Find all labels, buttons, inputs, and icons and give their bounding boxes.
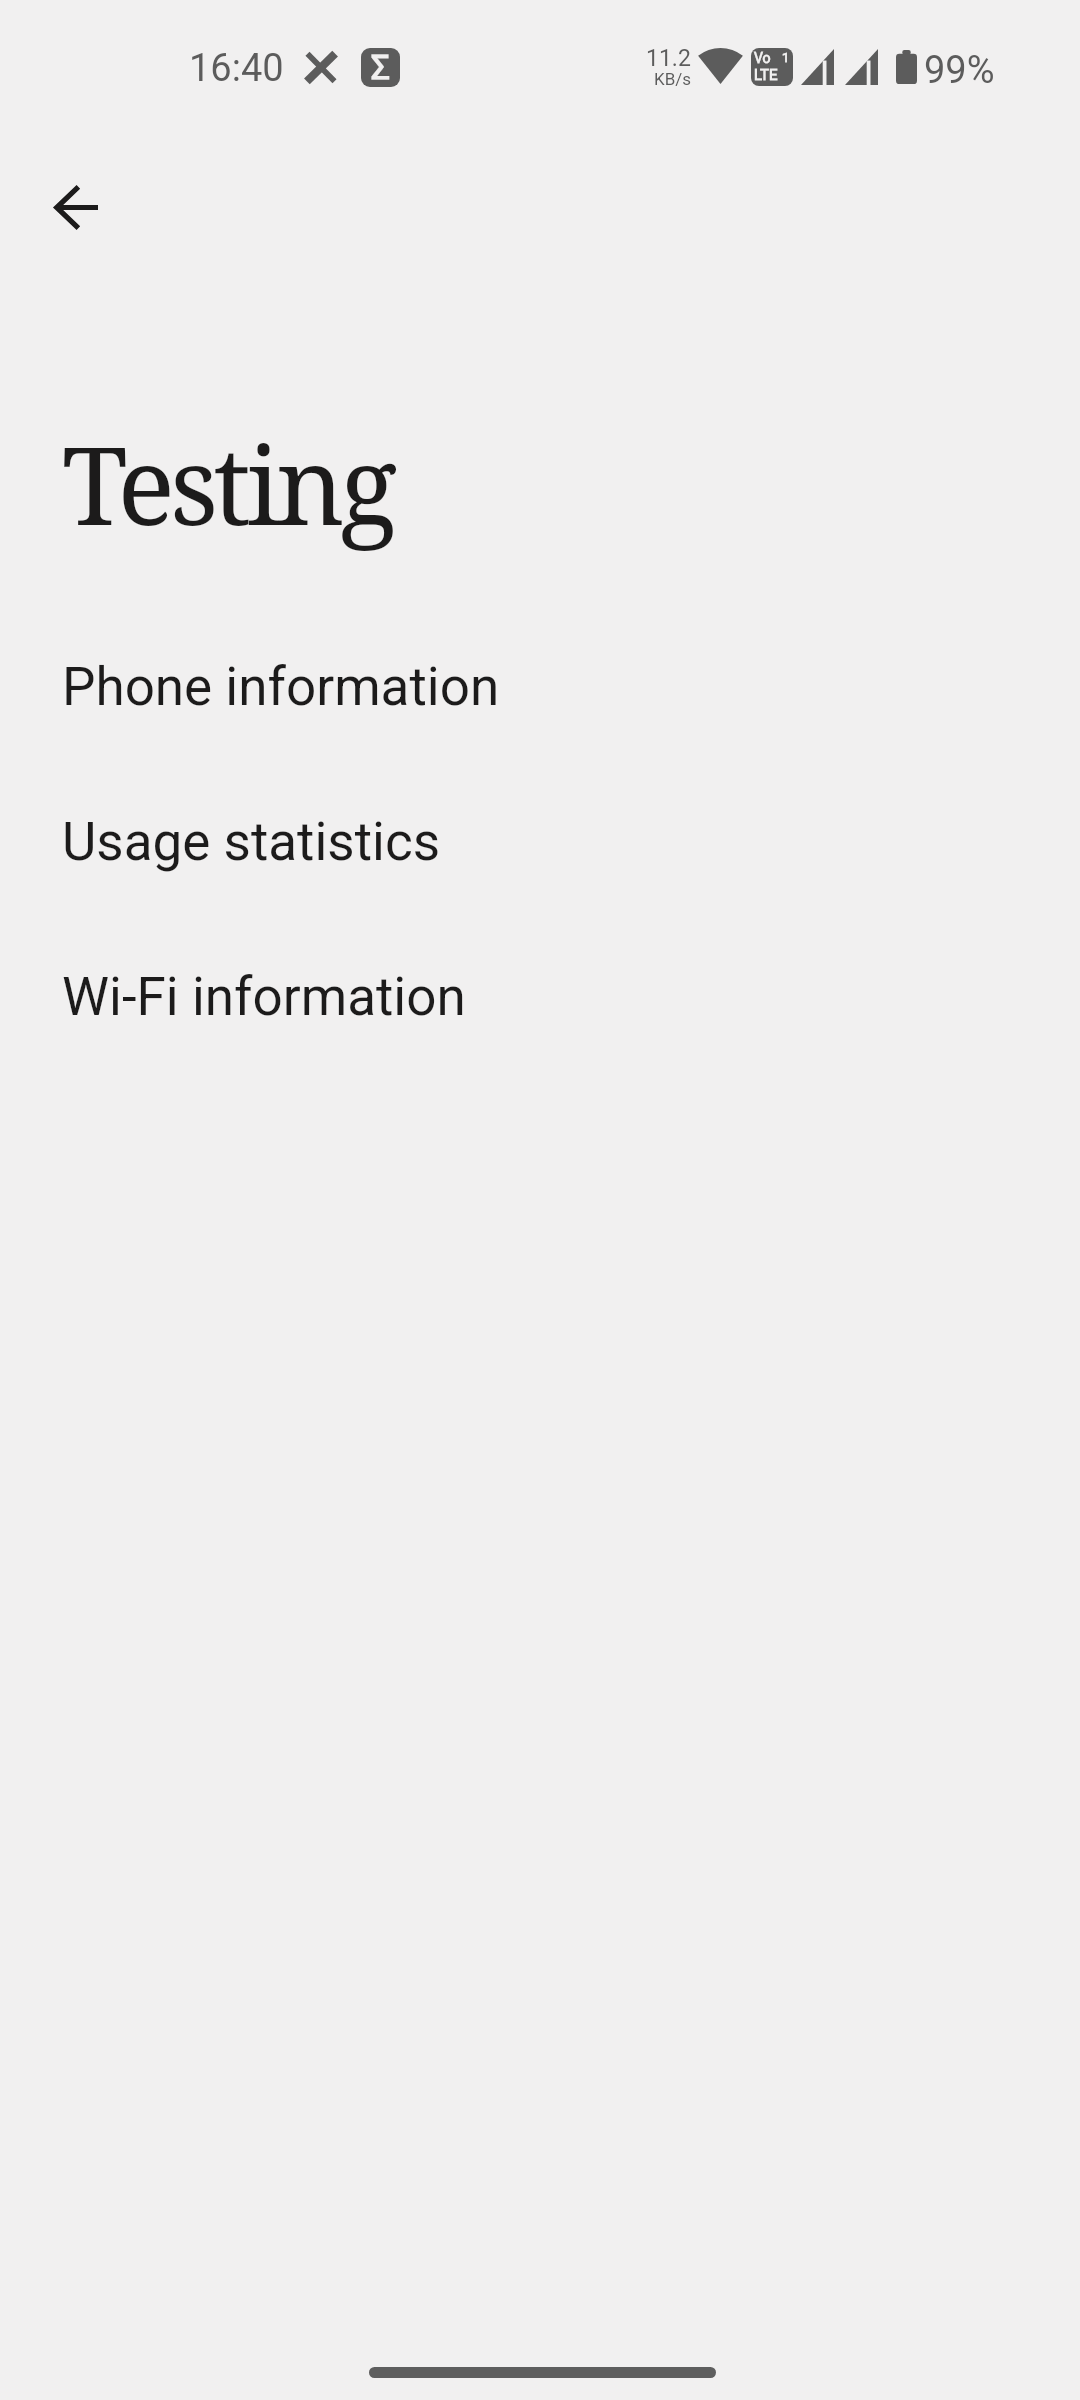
button[interactable]: Phone information xyxy=(0,609,1080,764)
button[interactable]: Back xyxy=(28,159,124,255)
other: Sigma notification xyxy=(361,48,400,87)
staticText: 16:40 xyxy=(189,46,284,91)
staticText: Vo xyxy=(754,50,771,66)
other: X app notification xyxy=(306,52,336,83)
staticText: 99% xyxy=(924,48,995,93)
staticText: LTE xyxy=(754,66,778,84)
staticText: 11.2 xyxy=(646,45,691,72)
staticText: Σ xyxy=(371,48,390,87)
button[interactable]: Wi-Fi information xyxy=(0,919,1080,1074)
staticText: Usage statistics xyxy=(62,811,440,873)
staticText: Wi-Fi information xyxy=(62,966,466,1028)
staticText: 1 xyxy=(782,50,790,65)
staticText: Testing xyxy=(62,411,393,557)
staticText: Phone information xyxy=(62,656,500,718)
staticText: KB/s xyxy=(654,69,692,89)
button[interactable]: Usage statistics xyxy=(0,764,1080,919)
